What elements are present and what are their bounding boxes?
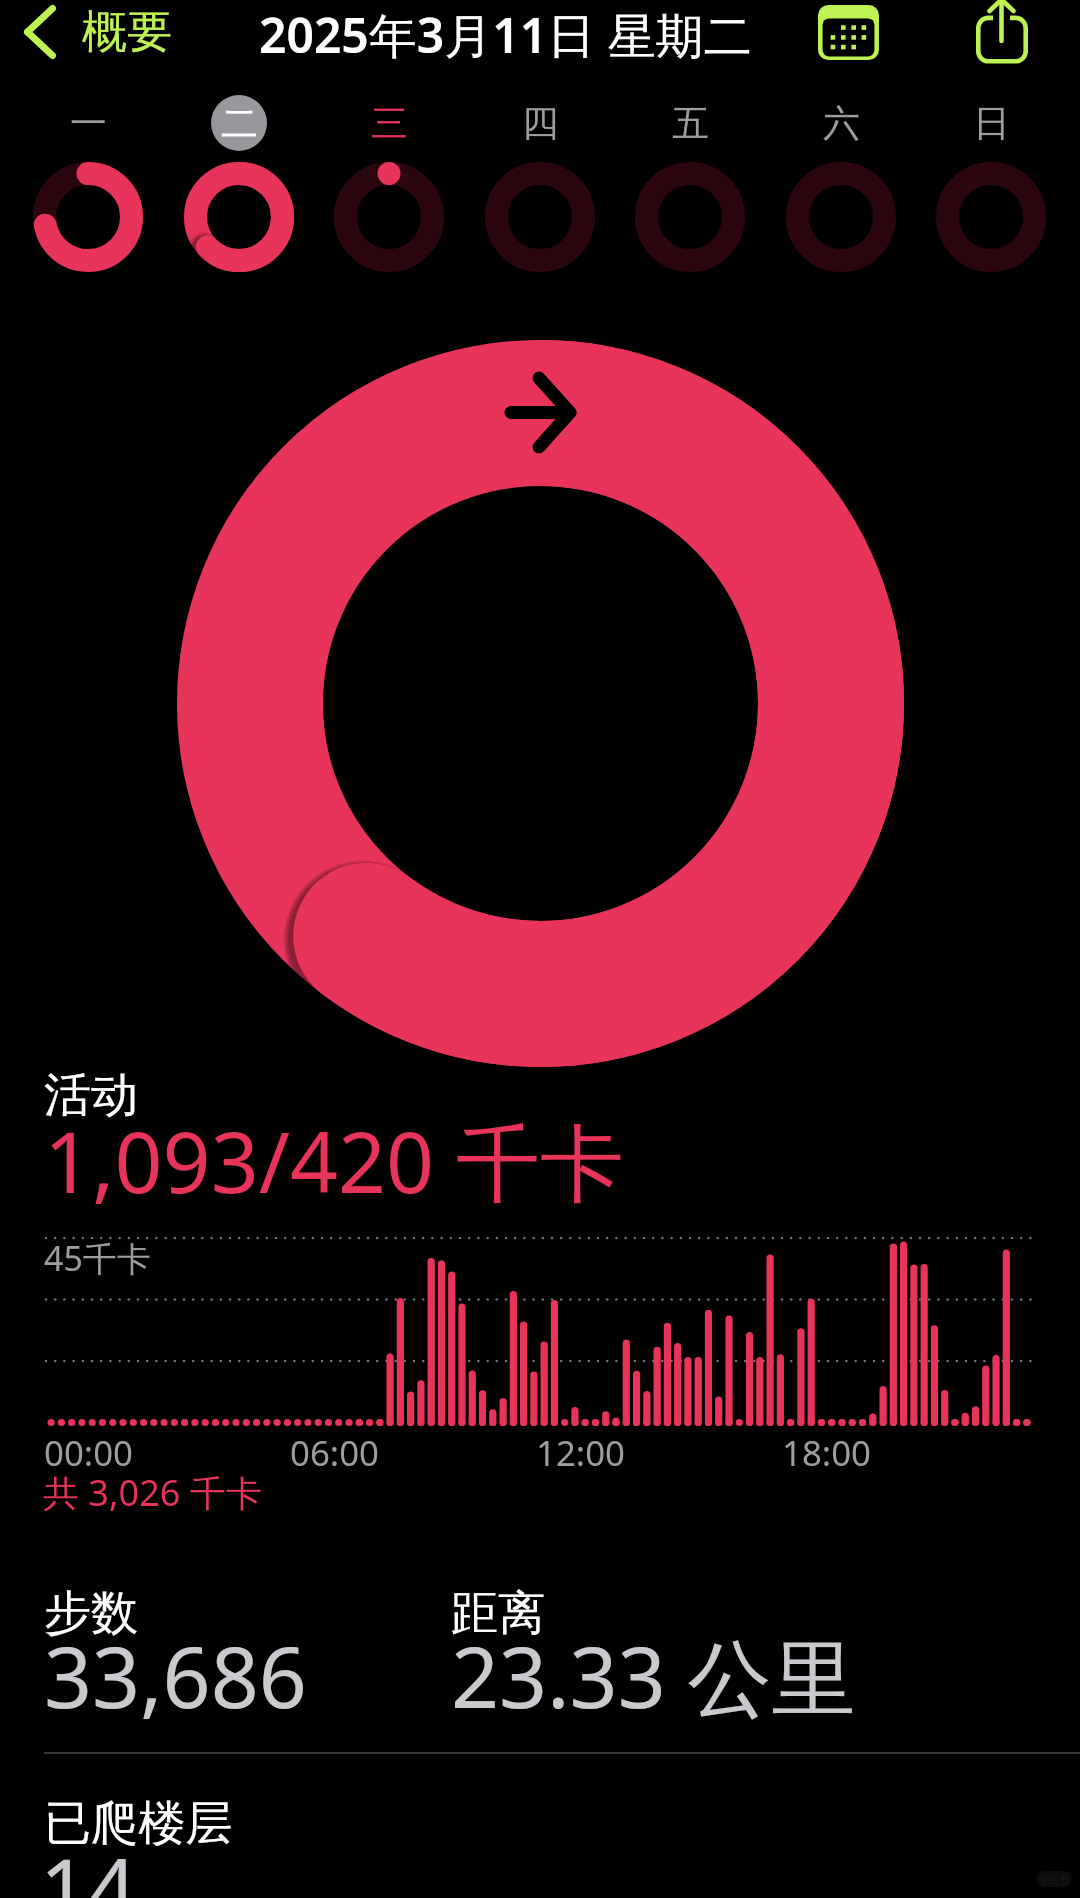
button[interactable]: 日 xyxy=(963,95,1019,151)
button[interactable]: 三 xyxy=(361,95,417,151)
button[interactable]: 概要 xyxy=(24,4,172,60)
staticText: 日 xyxy=(973,100,1010,146)
staticText: 小红书 xyxy=(1038,1873,1070,1886)
staticText: 概要 xyxy=(82,4,172,60)
button[interactable]: 二 xyxy=(211,95,267,151)
button[interactable]: 六 xyxy=(813,95,869,151)
staticText: 已爬楼层 xyxy=(44,1794,233,1853)
button[interactable]: 已爬楼层 xyxy=(0,1780,1080,1898)
button[interactable]: Move ring 1,093 of 420 kilocalories xyxy=(177,340,904,1067)
staticText: 18:00 xyxy=(782,1429,871,1476)
staticText: 三 xyxy=(371,100,408,146)
button[interactable]: Calendar xyxy=(818,5,879,60)
staticText: 2025年3月11日 星期二 xyxy=(259,2,752,68)
button[interactable] xyxy=(485,162,595,272)
staticText: 四 xyxy=(522,100,559,146)
button[interactable]: 四 xyxy=(512,95,568,151)
button[interactable] xyxy=(33,162,143,272)
button[interactable] xyxy=(334,162,444,272)
button[interactable]: 活动 xyxy=(0,1050,1080,1210)
staticText: 00:00 xyxy=(44,1429,133,1476)
staticText: 步数 xyxy=(44,1584,139,1643)
button[interactable] xyxy=(936,162,1046,272)
staticText: 23.33 公里 xyxy=(451,1618,856,1733)
button[interactable]: Share xyxy=(972,0,1032,66)
staticText: 45千卡 xyxy=(44,1235,151,1281)
button[interactable]: 一 xyxy=(60,95,116,151)
button[interactable] xyxy=(635,162,745,272)
button[interactable] xyxy=(786,162,896,272)
button[interactable]: 步数 xyxy=(0,1570,1080,1750)
button[interactable] xyxy=(184,162,294,272)
staticText: 五 xyxy=(672,100,709,146)
staticText: 一 xyxy=(70,100,107,146)
staticText: 12:00 xyxy=(536,1429,625,1476)
staticText: 1,093/420 千卡 xyxy=(44,1103,624,1218)
staticText: 活动 xyxy=(44,1066,139,1125)
staticText: 06:00 xyxy=(290,1429,379,1476)
staticText: 14 xyxy=(40,1830,137,1898)
staticText: 共 3,026 千卡 xyxy=(43,1468,262,1517)
staticText: 二 xyxy=(221,100,258,146)
staticText: 六 xyxy=(823,100,860,146)
button[interactable]: 五 xyxy=(662,95,718,151)
staticText: 33,686 xyxy=(44,1618,307,1732)
staticText: 距离 xyxy=(451,1584,546,1643)
